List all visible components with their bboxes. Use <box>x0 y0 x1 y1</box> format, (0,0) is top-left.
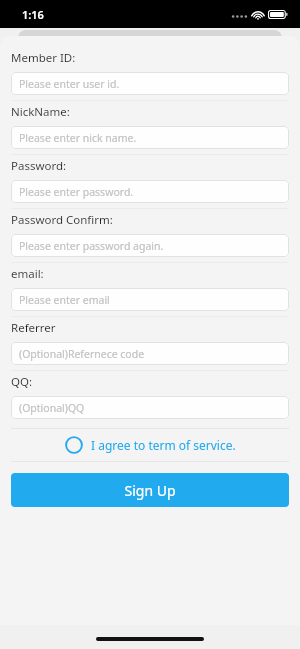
staticText: QQ: <box>11 374 33 390</box>
button[interactable]: Please enter password. <box>11 180 289 203</box>
button[interactable]: Please enter user id. <box>11 72 289 95</box>
button[interactable]: Please enter email <box>11 288 289 311</box>
staticText: Sign Up <box>124 481 176 500</box>
staticText: Member ID: <box>11 50 76 66</box>
staticText: Please enter password again. <box>19 239 164 253</box>
staticText: Password Confirm: <box>11 212 113 228</box>
staticText: (Optional)Refernece code <box>19 347 145 361</box>
button[interactable]: Agree to terms checkbox <box>11 429 289 461</box>
staticText: NickName: <box>11 104 70 120</box>
staticText: I agree to term of service. <box>91 437 236 453</box>
other: Agree to terms checkbox <box>65 436 83 454</box>
staticText: Password: <box>11 158 67 174</box>
staticText: 1:16 <box>22 7 44 22</box>
button[interactable]: (Optional)QQ <box>11 396 289 419</box>
staticText: Please enter password. <box>19 185 134 199</box>
button[interactable]: Please enter nick name. <box>11 126 289 149</box>
staticText: email: <box>11 266 44 282</box>
staticText: Please enter nick name. <box>19 131 137 145</box>
staticText: (Optional)QQ <box>19 401 85 415</box>
staticText: Please enter user id. <box>19 77 120 91</box>
staticText: Referrer <box>11 320 56 336</box>
button[interactable]: Please enter password again. <box>11 234 289 257</box>
button[interactable]: Sign Up <box>11 473 289 507</box>
staticText: Please enter email <box>19 293 110 307</box>
button[interactable]: (Optional)Refernece code <box>11 342 289 365</box>
